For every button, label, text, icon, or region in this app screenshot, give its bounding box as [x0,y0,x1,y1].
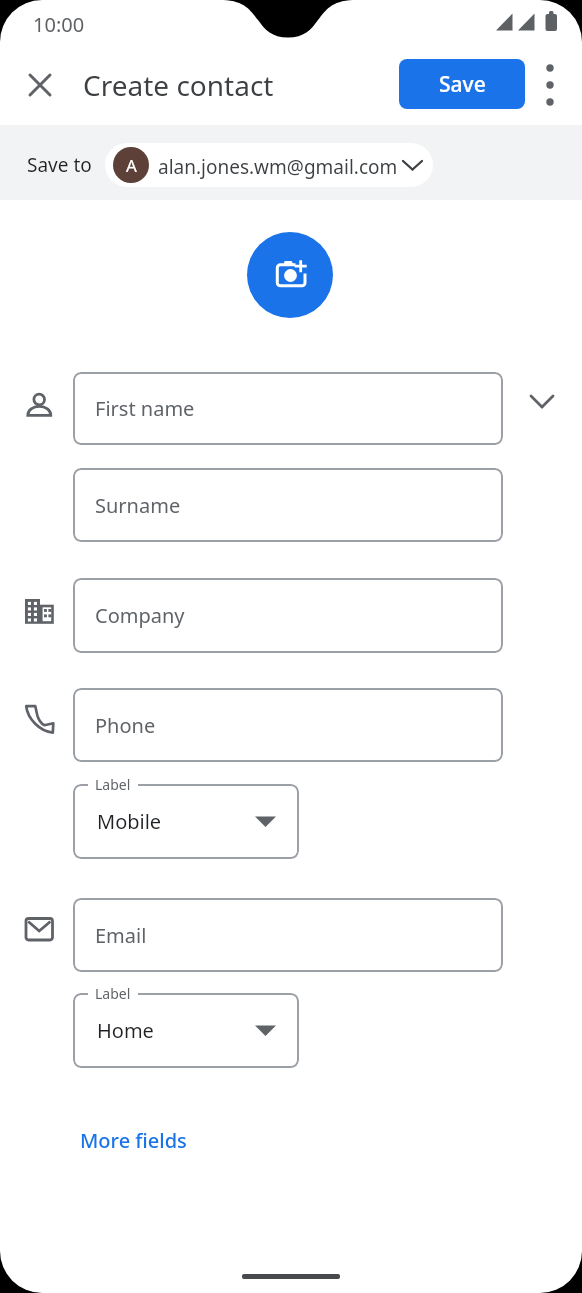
button[interactable] [529,394,555,409]
button[interactable]: Save [399,59,525,109]
staticText: Create contact [83,66,274,104]
staticText: Label [95,984,131,1003]
button[interactable]: Mobile [73,784,299,859]
button[interactable]: Surname [73,468,503,542]
button[interactable] [247,232,333,318]
button[interactable]: More fields [80,1127,187,1154]
staticText: 10:00 [33,11,85,38]
staticText: alan.jones.wm@gmail.com [158,154,398,180]
button[interactable] [543,62,557,108]
staticText: Mobile [97,808,162,835]
staticText: Surname [95,492,181,519]
button[interactable] [30,75,50,95]
staticText: A [126,154,137,177]
staticText: Save [439,70,486,99]
button[interactable]: Company [73,578,503,653]
button[interactable]: Email [73,898,503,972]
button[interactable]: Home [73,993,299,1068]
staticText: Home [97,1017,154,1044]
staticText: Label [95,775,131,794]
staticText: Save to [27,152,92,178]
button[interactable]: First name [73,372,503,445]
staticText: First name [95,395,195,422]
staticText: Phone [95,712,156,739]
button[interactable]: Phone [73,688,503,762]
button[interactable]: A [105,143,433,187]
staticText: Email [95,922,147,949]
staticText: Company [95,602,185,629]
